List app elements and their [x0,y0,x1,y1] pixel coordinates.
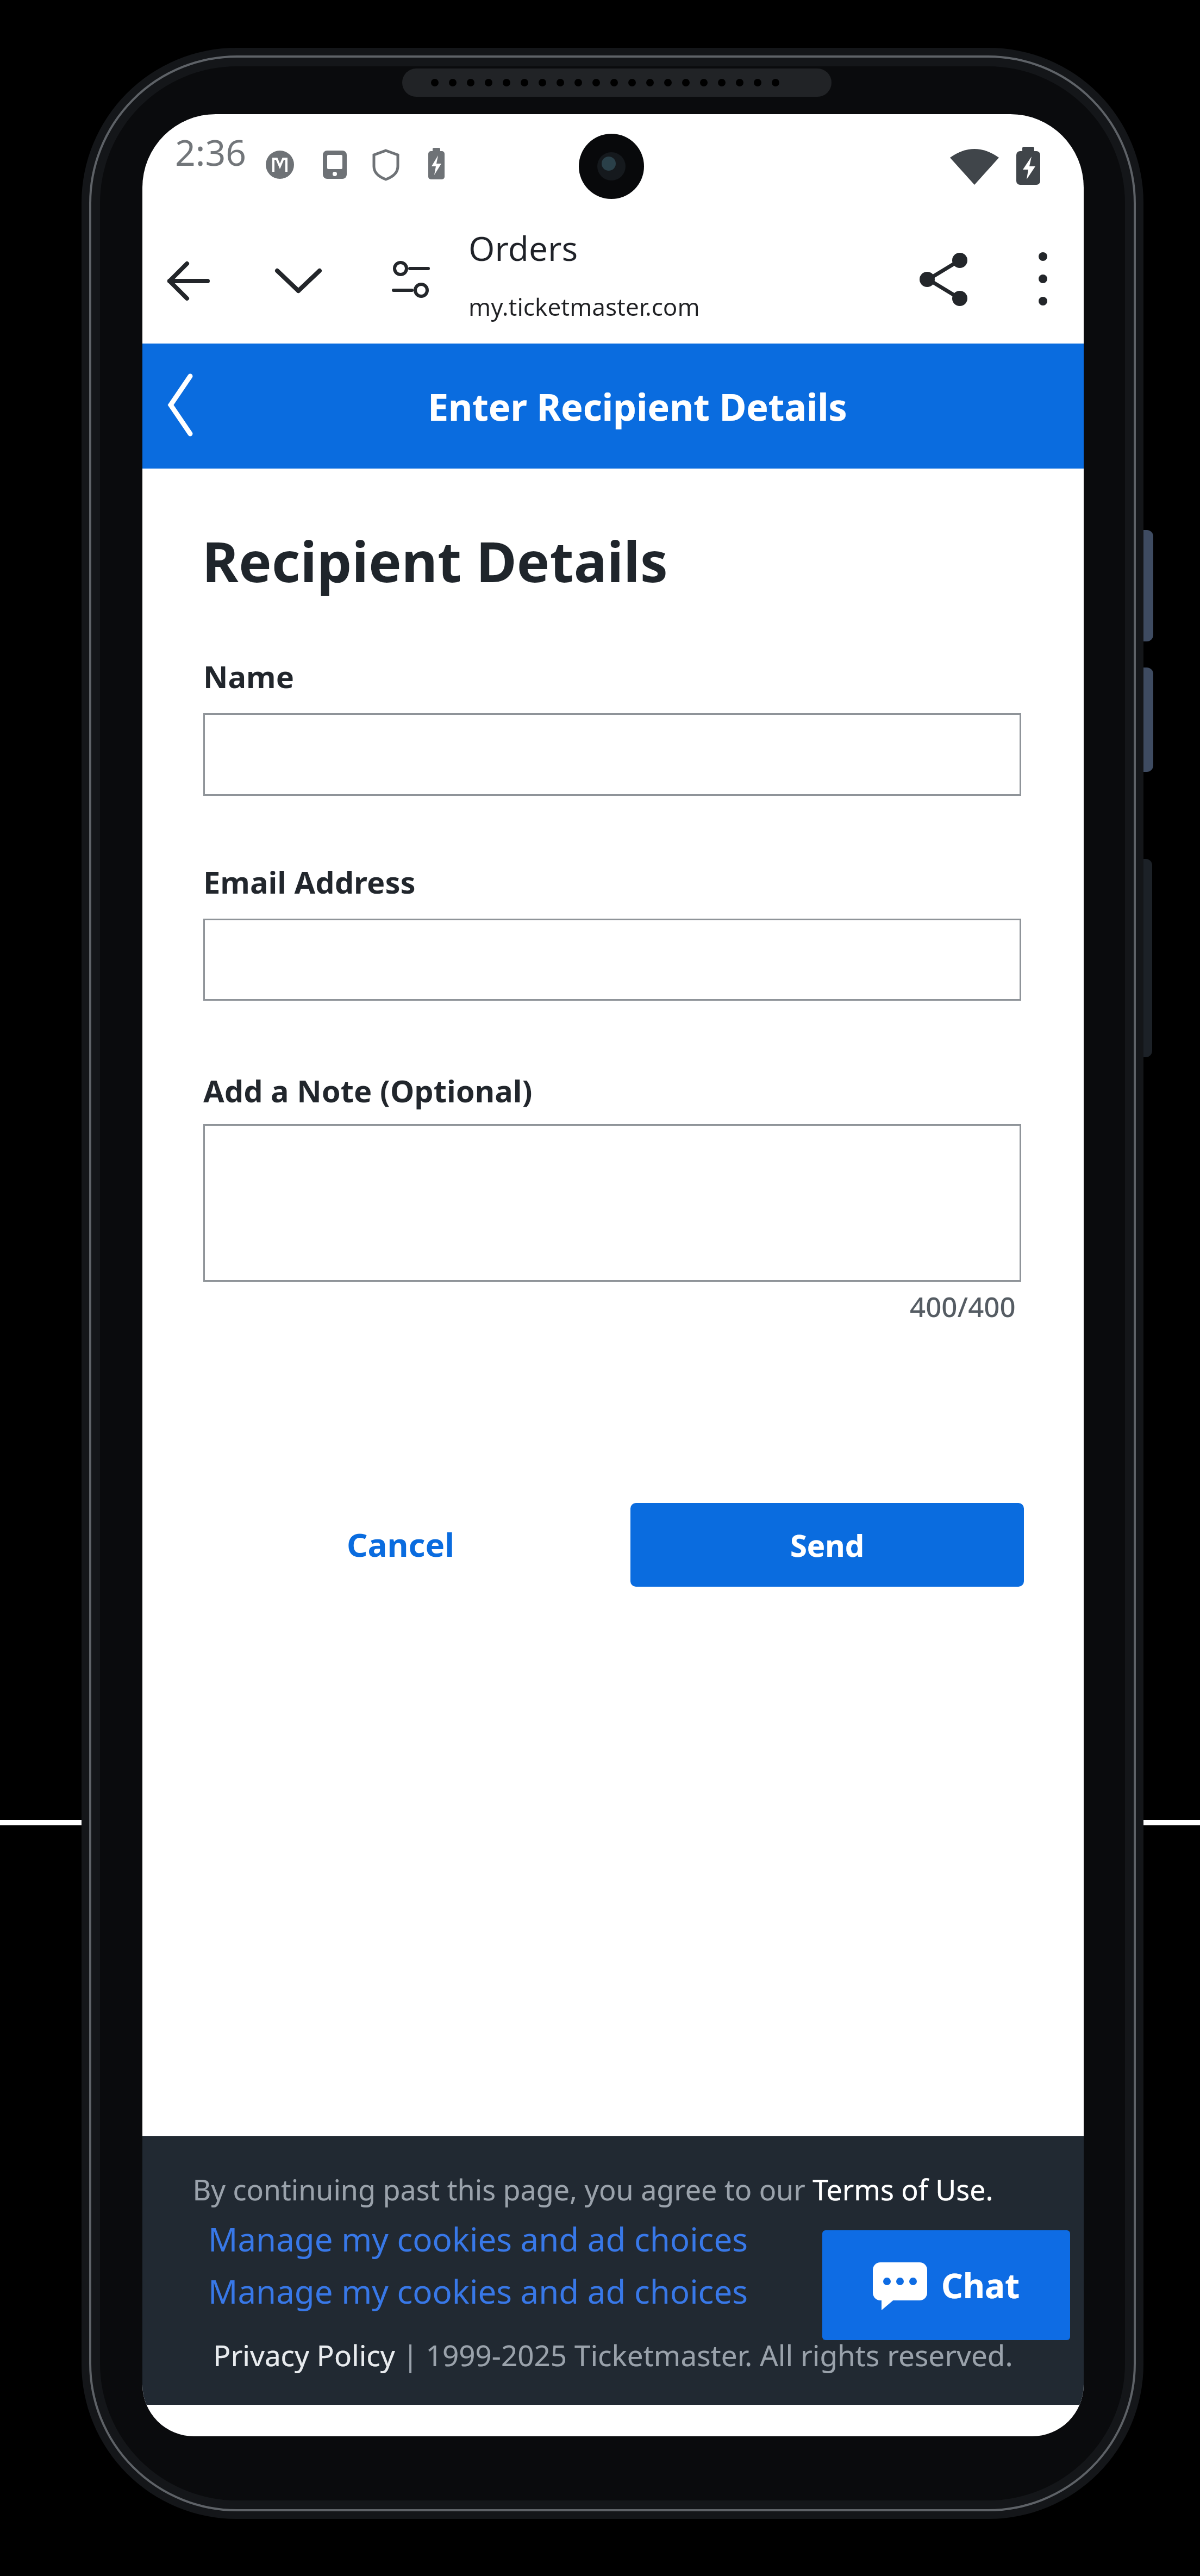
button[interactable] [1033,251,1053,311]
button[interactable]: By continuing past this page, you agree … [142,2170,1064,2209]
button[interactable]: Chat [822,2230,1070,2340]
staticText: Recipient Details [202,523,668,598]
staticText: Enter Recipient Details [428,381,847,432]
button[interactable]: Cancel [322,1514,479,1574]
staticText: Send [790,1524,865,1565]
staticText: Chat [941,2262,1020,2308]
button[interactable] [167,260,210,302]
staticText: Name [203,656,295,697]
staticText: 2:36 [175,127,246,176]
button[interactable] [203,1124,1021,1282]
button[interactable] [165,373,196,437]
button[interactable]: Privacy Policy | 1999-2025 Ticketmaster.… [142,2335,1084,2374]
staticText: Email Address [203,861,416,902]
staticText: 400/400 [910,1287,1016,1325]
staticText: my.ticketmaster.com [468,290,700,323]
button[interactable] [275,269,322,294]
button[interactable]: Send [630,1503,1024,1587]
staticText: Add a Note (Optional) [203,1070,533,1111]
button[interactable]: Manage my cookies and ad choices [142,114,682,159]
staticText: Orders [468,225,578,271]
button[interactable] [203,919,1021,1001]
button[interactable] [918,253,968,305]
button[interactable]: Manage my cookies and ad choices [142,114,682,159]
button[interactable] [392,262,430,298]
staticText: Cancel [347,1522,455,1567]
button[interactable] [203,713,1021,796]
